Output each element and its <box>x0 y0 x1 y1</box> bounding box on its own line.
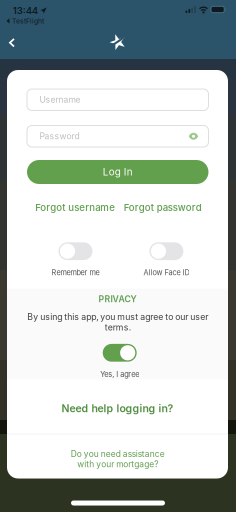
staticText: Password <box>40 131 80 141</box>
button[interactable]: Forgot password <box>124 199 202 216</box>
staticText: Username <box>40 95 81 105</box>
staticText: 13:44 <box>13 5 38 16</box>
button[interactable]: Log In <box>27 160 208 184</box>
button[interactable]: Remember me <box>58 242 92 260</box>
staticText: Allow Face ID <box>143 268 189 277</box>
button[interactable]: Show password <box>187 129 199 143</box>
staticText: Log In <box>103 166 133 178</box>
staticText: Do you need assistance with your mortgag… <box>70 449 164 469</box>
button[interactable]: Allow Face ID <box>149 242 183 260</box>
button[interactable]: Do you need assistance with your mortgag… <box>7 437 228 481</box>
button[interactable]: Back <box>0 28 27 57</box>
staticText: PRIVACY <box>98 294 136 304</box>
staticText: Remember me <box>51 268 99 277</box>
staticText: Need help logging in? <box>61 402 173 415</box>
staticText: Yes, I agree <box>100 370 139 379</box>
staticText: Forgot username <box>35 202 115 213</box>
staticText: By using this app, you must agree to our… <box>27 311 208 332</box>
staticText: Forgot password <box>124 202 202 213</box>
button[interactable]: Forgot username <box>35 199 115 216</box>
button[interactable]: Need help logging in? <box>7 386 228 431</box>
button[interactable]: Yes, I agree <box>103 344 137 362</box>
staticText: TestFlight <box>12 17 44 25</box>
